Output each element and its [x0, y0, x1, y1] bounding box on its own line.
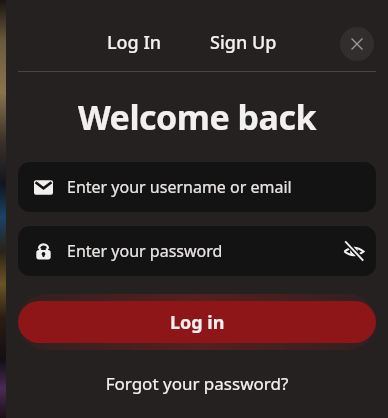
button[interactable]: Sign Up [210, 0, 277, 55]
button[interactable]: Close [340, 27, 374, 61]
staticText: Sign Up [210, 30, 277, 55]
staticText: Welcome back [6, 94, 388, 140]
button[interactable]: Enter your username or email [18, 162, 376, 212]
button[interactable]: Enter your password [18, 226, 376, 276]
staticText: Log In [107, 30, 162, 55]
staticText: Enter your password [67, 240, 223, 262]
button[interactable]: Forgot your password? [6, 366, 388, 401]
staticText: Enter your username or email [67, 176, 292, 198]
staticText: Log in [170, 310, 225, 335]
button[interactable]: Log In [90, 0, 178, 72]
button[interactable]: Show password [332, 229, 376, 273]
button[interactable]: Log in [18, 301, 376, 343]
